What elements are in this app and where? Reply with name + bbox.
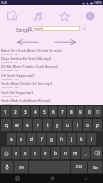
button[interactable]: Days Sindhu Ko Sneh Ma.mp3: [0, 55, 103, 63]
staticText: z: [15, 150, 18, 156]
button[interactable]: v: [41, 147, 50, 159]
staticText: n: [64, 150, 67, 156]
button[interactable]: Recents: [0, 174, 35, 183]
staticText: m: [73, 150, 78, 156]
button[interactable]: w: [12, 119, 22, 131]
staticText: <unknown> 3:42: [1, 86, 19, 88]
button[interactable]: Home: [35, 174, 69, 183]
button[interactable]: 0: [85, 106, 93, 117]
button[interactable]: Sneh Male Sukhdham(h).mp3: [0, 97, 103, 105]
staticText: u: [66, 122, 69, 128]
button[interactable]: Previous page: [14, 37, 42, 46]
button[interactable]: f: [37, 133, 46, 145]
staticText: 100%: [94, 1, 102, 5]
button[interactable]: Go: [88, 161, 102, 173]
staticText: <unknown> 3:42: [1, 95, 19, 97]
staticText: TH: [19, 165, 24, 170]
button[interactable]: Folders: [0, 5, 25, 27]
staticText: <unknown> 3:42: [1, 78, 19, 80]
button[interactable]: n: [61, 147, 70, 159]
button[interactable]: 6: [49, 106, 57, 117]
staticText: 6: [52, 109, 55, 115]
button[interactable]: 1: [1, 106, 10, 117]
staticText: 0: [88, 109, 91, 115]
button[interactable]: Hide keyboard: [69, 174, 103, 183]
staticText: Sneh Male Sukhdham(h).mp3: [1, 98, 51, 103]
staticText: 7: [61, 109, 64, 115]
staticText: 4: [34, 109, 37, 115]
button[interactable]: Shift: [1, 147, 11, 159]
staticText: r: [37, 122, 39, 128]
staticText: Sneh Ka Sagar.mp3: [1, 90, 34, 95]
button[interactable]: Oh Sneh Sagar.mp3: [0, 72, 103, 80]
button[interactable]: ,.: [81, 147, 90, 159]
button[interactable]: b: [51, 147, 60, 159]
staticText: k: [80, 136, 83, 142]
button[interactable]: r: [33, 119, 42, 131]
button[interactable]: z: [12, 147, 20, 159]
staticText: sneh: [35, 26, 44, 31]
button[interactable]: k: [77, 133, 86, 145]
button[interactable]: TH: [14, 161, 28, 173]
staticText: 5: [43, 109, 46, 115]
button[interactable]: p: [93, 119, 102, 131]
button[interactable]: 8: [67, 106, 75, 117]
button[interactable]: Favourites: [51, 5, 77, 27]
button[interactable]: 7: [58, 106, 66, 117]
button[interactable]: Search: [28, 27, 33, 32]
staticText: c: [34, 150, 37, 156]
button[interactable]: q: [1, 119, 11, 131]
button[interactable]: Sneh Bhari Drishti Se Teri.mp3: [0, 80, 103, 88]
staticText: <unknown> 3:42: [1, 61, 19, 63]
button[interactable]: x: [21, 147, 30, 159]
button[interactable]: e: [23, 119, 32, 131]
button[interactable]: Baba Teri Sneh Bhari Drishti Se.mp3: [0, 47, 103, 55]
staticText: ,.: [85, 151, 87, 156]
button[interactable]: 9: [76, 106, 84, 117]
button[interactable]: Next page: [51, 37, 79, 46]
staticText: <unknown> 3:42: [1, 103, 19, 105]
staticText: f: [41, 136, 43, 142]
staticText: g: [50, 136, 53, 142]
button[interactable]: j: [67, 133, 76, 145]
staticText: 8: [70, 109, 73, 115]
button[interactable]: s: [17, 133, 26, 145]
staticText: <unknown> 3:42: [1, 69, 19, 71]
staticText: q: [5, 122, 8, 128]
button[interactable]: d: [27, 133, 36, 145]
button[interactable]: a: [7, 133, 16, 145]
button[interactable]: 4: [31, 106, 39, 117]
button[interactable]: Clear search: [83, 27, 86, 30]
button[interactable]: Voice input: [1, 161, 13, 173]
button[interactable]: h: [57, 133, 66, 145]
button[interactable]: i: [73, 119, 82, 131]
button[interactable]: Emoji: [94, 106, 102, 117]
button[interactable]: g: [47, 133, 56, 145]
button[interactable]: l: [87, 133, 96, 145]
button[interactable]: All songs: [25, 5, 51, 27]
button[interactable]: Sneh Ka Sagar.mp3: [0, 89, 103, 97]
staticText: 2: [14, 109, 17, 115]
button[interactable]: 5: [40, 106, 48, 117]
staticText: v: [44, 150, 47, 156]
button[interactable]: sneh: [34, 26, 80, 31]
button[interactable]: c: [31, 147, 40, 159]
button[interactable]: Settings: [77, 5, 103, 27]
button[interactable]: .!123: [71, 161, 87, 173]
button[interactable]: t: [43, 119, 52, 131]
staticText: h: [60, 136, 63, 142]
button[interactable]: Backspace: [91, 147, 102, 159]
button[interactable]: y: [53, 119, 62, 131]
button[interactable]: o: [83, 119, 92, 131]
button[interactable]: m: [71, 147, 80, 159]
button[interactable]: 3: [21, 106, 30, 117]
staticText: Days Sindhu Ko Sneh Ma.mp3: [1, 56, 52, 61]
button[interactable]: 2: [11, 106, 20, 117]
staticText: <unknown> 3:42: [1, 53, 19, 55]
button[interactable]: u: [63, 119, 72, 131]
button[interactable]: Dil Me Mere Prabhu Sneh Ra.mp3: [0, 63, 103, 71]
staticText: 1: [4, 109, 7, 115]
staticText: o: [86, 122, 89, 128]
staticText: Dil Me Mere Prabhu Sneh Ra.mp3: [1, 64, 58, 69]
